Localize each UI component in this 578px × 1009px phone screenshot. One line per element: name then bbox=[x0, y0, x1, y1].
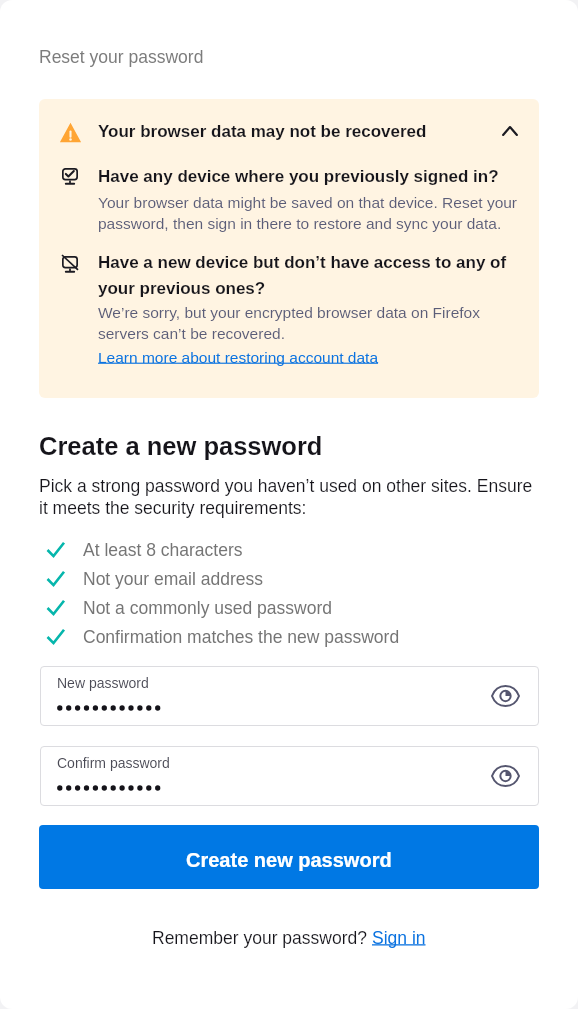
staticText: Confirmation matches the new password bbox=[83, 627, 400, 647]
button[interactable]: At least 8 characters bbox=[38, 535, 243, 564]
staticText: Your browser data might be saved on that… bbox=[98, 194, 520, 232]
button[interactable]: Not a commonly used password bbox=[38, 593, 332, 622]
staticText: Confirm password bbox=[57, 755, 170, 771]
button[interactable]: Sign in bbox=[372, 928, 426, 948]
button[interactable]: New password bbox=[40, 666, 539, 726]
staticText: Pick a strong password you haven’t used … bbox=[39, 476, 539, 518]
button[interactable]: Not your email address bbox=[38, 564, 263, 593]
staticText: Your browser data may not be recovered bbox=[98, 122, 427, 141]
staticText: Learn more about restoring account data bbox=[98, 349, 379, 366]
staticText: Remember your password? bbox=[152, 928, 372, 948]
button[interactable]: Show password bbox=[489, 680, 521, 712]
staticText: Not your email address bbox=[83, 569, 263, 589]
staticText: Create new password bbox=[186, 849, 392, 871]
staticText: New password bbox=[57, 675, 149, 691]
button[interactable]: Learn more about restoring account data bbox=[98, 349, 379, 366]
button[interactable]: Confirmation matches the new password bbox=[38, 622, 400, 651]
button[interactable]: Create new password bbox=[39, 825, 539, 889]
staticText: Have a new device but don’t have access … bbox=[98, 253, 520, 297]
staticText: We’re sorry, but your encrypted browser … bbox=[98, 304, 520, 342]
button[interactable]: Confirm password bbox=[40, 746, 539, 806]
staticText: At least 8 characters bbox=[83, 540, 243, 560]
staticText: Reset your password bbox=[39, 47, 204, 67]
staticText: Create a new password bbox=[39, 432, 323, 460]
button[interactable]: Collapse bbox=[496, 117, 523, 144]
staticText: Not a commonly used password bbox=[83, 598, 332, 618]
button[interactable]: Show password bbox=[489, 760, 521, 792]
staticText: Sign in bbox=[372, 928, 426, 948]
staticText: Have any device where you previously sig… bbox=[98, 167, 499, 186]
